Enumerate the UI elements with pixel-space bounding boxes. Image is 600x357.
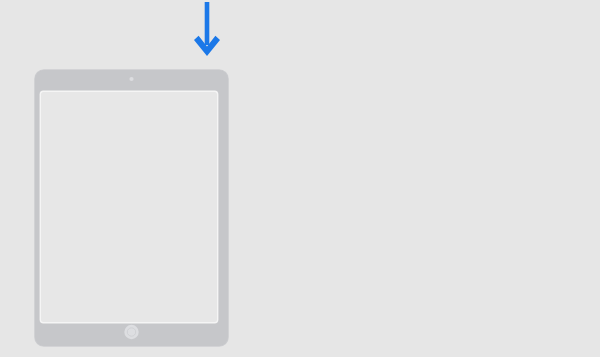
button[interactable]: Tablet device illustration with download… [0, 0, 600, 357]
